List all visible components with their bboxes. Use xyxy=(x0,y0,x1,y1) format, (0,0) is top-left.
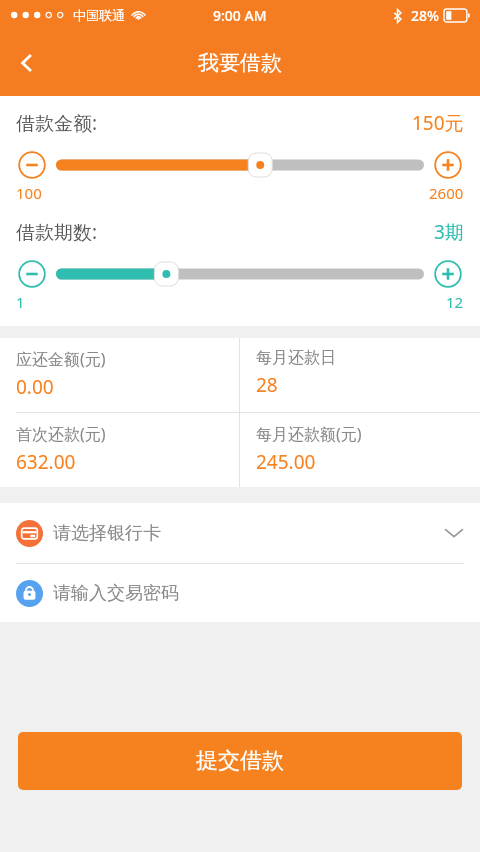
button[interactable]: Increase xyxy=(432,149,464,181)
button[interactable]: Back xyxy=(0,36,54,90)
staticText: 100 xyxy=(16,183,42,203)
button[interactable]: Slider xyxy=(56,259,424,289)
button[interactable]: 请选择银行卡 xyxy=(0,503,480,563)
staticText: 245.00 xyxy=(256,449,316,475)
staticText: 每月还款日 xyxy=(256,348,336,368)
staticText: 请选择银行卡 xyxy=(53,522,161,545)
staticText: 每月还款额(元) xyxy=(256,423,362,445)
staticText: 首次还款(元) xyxy=(16,423,106,445)
staticText: 12 xyxy=(446,292,464,312)
staticText: 3期 xyxy=(434,219,464,245)
staticText: 提交借款 xyxy=(196,747,284,775)
staticText: 0.00 xyxy=(16,374,54,400)
staticText: 我要借款 xyxy=(198,50,282,76)
button[interactable]: Slider xyxy=(56,150,424,180)
staticText: 中国联通 xyxy=(73,7,125,23)
staticText: 150元 xyxy=(412,110,464,136)
staticText: 借款期数: xyxy=(16,219,98,245)
staticText: 应还金额(元) xyxy=(16,348,106,370)
staticText: 1 xyxy=(16,292,25,312)
staticText: 借款金额: xyxy=(16,110,98,136)
staticText: 28% xyxy=(411,6,439,25)
button[interactable]: 提交借款 xyxy=(18,732,462,790)
button[interactable]: Decrease xyxy=(16,149,48,181)
staticText: 请输入交易密码 xyxy=(53,582,179,605)
staticText: 2600 xyxy=(429,183,464,203)
staticText: 9:00 AM xyxy=(213,6,267,25)
staticText: 632.00 xyxy=(16,449,76,475)
staticText: 28 xyxy=(256,372,278,398)
button[interactable]: Decrease xyxy=(16,258,48,290)
button[interactable]: 请输入交易密码 xyxy=(0,564,480,622)
button[interactable]: Increase xyxy=(432,258,464,290)
